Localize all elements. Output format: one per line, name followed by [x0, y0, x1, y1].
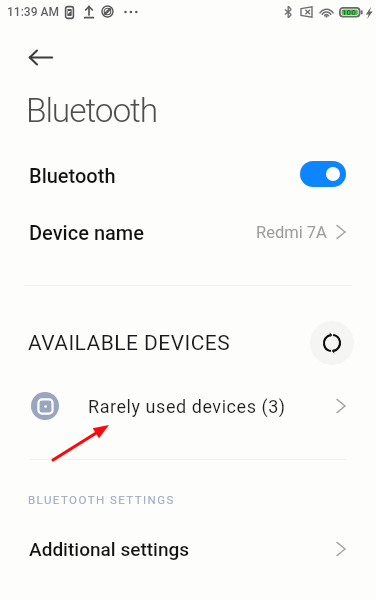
- staticText: Redmi 7A: [256, 223, 327, 242]
- staticText: Device name: [29, 221, 144, 244]
- staticText: AVAILABLE DEVICES: [28, 331, 231, 356]
- staticText: Rarely used devices (3): [88, 396, 286, 417]
- staticText: 100: [342, 8, 356, 17]
- button[interactable]: Refresh: [310, 321, 354, 365]
- button[interactable]: Additional settings: [0, 528, 376, 570]
- button[interactable]: Rarely used devices (3): [0, 378, 376, 434]
- staticText: Additional settings: [29, 538, 190, 560]
- button[interactable]: Back: [19, 37, 59, 77]
- staticText: Bluetooth: [29, 164, 116, 187]
- button[interactable]: Bluetooth: [0, 150, 376, 200]
- button[interactable]: Bluetooth on: [300, 161, 346, 187]
- staticText: 11:39 AM: [7, 5, 59, 19]
- staticText: Bluetooth: [26, 91, 158, 130]
- staticText: BLUETOOTH SETTINGS: [28, 493, 175, 506]
- button[interactable]: Device name: [0, 207, 376, 257]
